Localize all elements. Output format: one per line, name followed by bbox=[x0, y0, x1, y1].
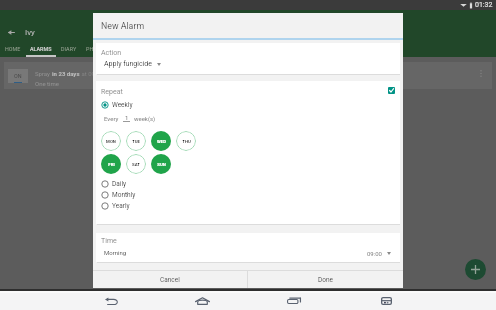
staticText: 1 bbox=[125, 114, 129, 121]
button[interactable]: Split screen bbox=[376, 292, 396, 309]
button[interactable]: ON bbox=[4, 62, 492, 89]
button[interactable]: WED bbox=[151, 131, 171, 151]
button[interactable]: Apply fungicide bbox=[104, 60, 161, 68]
staticText: Cancel bbox=[160, 276, 180, 284]
button[interactable]: Cancel bbox=[93, 271, 247, 288]
staticText: MON bbox=[106, 139, 116, 144]
staticText: HOME bbox=[5, 46, 21, 52]
staticText: ALARMS bbox=[30, 46, 52, 52]
staticText: Action bbox=[101, 49, 122, 57]
button[interactable]: Monthly bbox=[101, 191, 136, 199]
staticText: THU bbox=[182, 139, 191, 144]
staticText: 01:32 bbox=[475, 1, 493, 9]
button[interactable]: 09:00 bbox=[367, 250, 391, 257]
staticText: SAT bbox=[132, 162, 140, 167]
staticText: Every bbox=[104, 115, 119, 122]
button[interactable]: THU bbox=[176, 131, 196, 151]
staticText: at 09:00 bbox=[80, 70, 104, 77]
staticText: New Alarm bbox=[101, 21, 145, 31]
button[interactable]: Repeat enabled bbox=[386, 85, 397, 96]
staticText: SUN bbox=[157, 162, 166, 167]
staticText: TUE bbox=[132, 139, 140, 144]
button[interactable]: Daily bbox=[101, 180, 127, 188]
staticText: PH bbox=[86, 46, 94, 52]
staticText: Morning bbox=[104, 249, 127, 256]
button[interactable]: SUN bbox=[151, 154, 171, 174]
staticText: WED bbox=[157, 139, 166, 144]
button[interactable]: Home bbox=[192, 292, 212, 309]
staticText: Ivy bbox=[25, 28, 35, 37]
staticText: Daily bbox=[112, 180, 127, 188]
button[interactable]: Weekly bbox=[101, 101, 133, 109]
button[interactable]: Back bbox=[2, 23, 20, 41]
button[interactable]: PH bbox=[80, 40, 99, 57]
staticText: DIARY bbox=[61, 46, 77, 52]
staticText: ON bbox=[14, 73, 22, 79]
staticText: FRI bbox=[108, 162, 115, 167]
staticText: Time bbox=[101, 237, 117, 245]
button[interactable]: More options bbox=[477, 69, 485, 77]
staticText: in 23 days bbox=[52, 70, 80, 77]
button[interactable]: MON bbox=[101, 131, 121, 151]
staticText: Apply fungicide bbox=[104, 60, 152, 68]
button[interactable]: DIARY bbox=[57, 40, 80, 57]
button[interactable]: FRI bbox=[101, 154, 121, 174]
button[interactable]: TUE bbox=[126, 131, 146, 151]
button[interactable]: Add alarm bbox=[465, 259, 486, 280]
staticText: One time bbox=[35, 80, 59, 87]
staticText: Monthly bbox=[112, 191, 136, 199]
staticText: week(s) bbox=[134, 115, 156, 122]
button[interactable]: Done bbox=[248, 271, 403, 288]
staticText: Done bbox=[318, 276, 334, 284]
button[interactable]: Recent apps bbox=[284, 292, 304, 309]
staticText: Repeat bbox=[101, 88, 123, 96]
button[interactable]: HOME bbox=[0, 40, 25, 57]
staticText: Yearly bbox=[112, 202, 130, 210]
staticText: 09:00 bbox=[367, 250, 382, 257]
staticText: Spray bbox=[35, 70, 52, 77]
button[interactable]: ALARMS bbox=[25, 40, 57, 57]
staticText: Weekly bbox=[112, 101, 133, 109]
button[interactable]: Back bbox=[101, 292, 121, 309]
button[interactable]: SAT bbox=[126, 154, 146, 174]
button[interactable]: Yearly bbox=[101, 202, 130, 210]
